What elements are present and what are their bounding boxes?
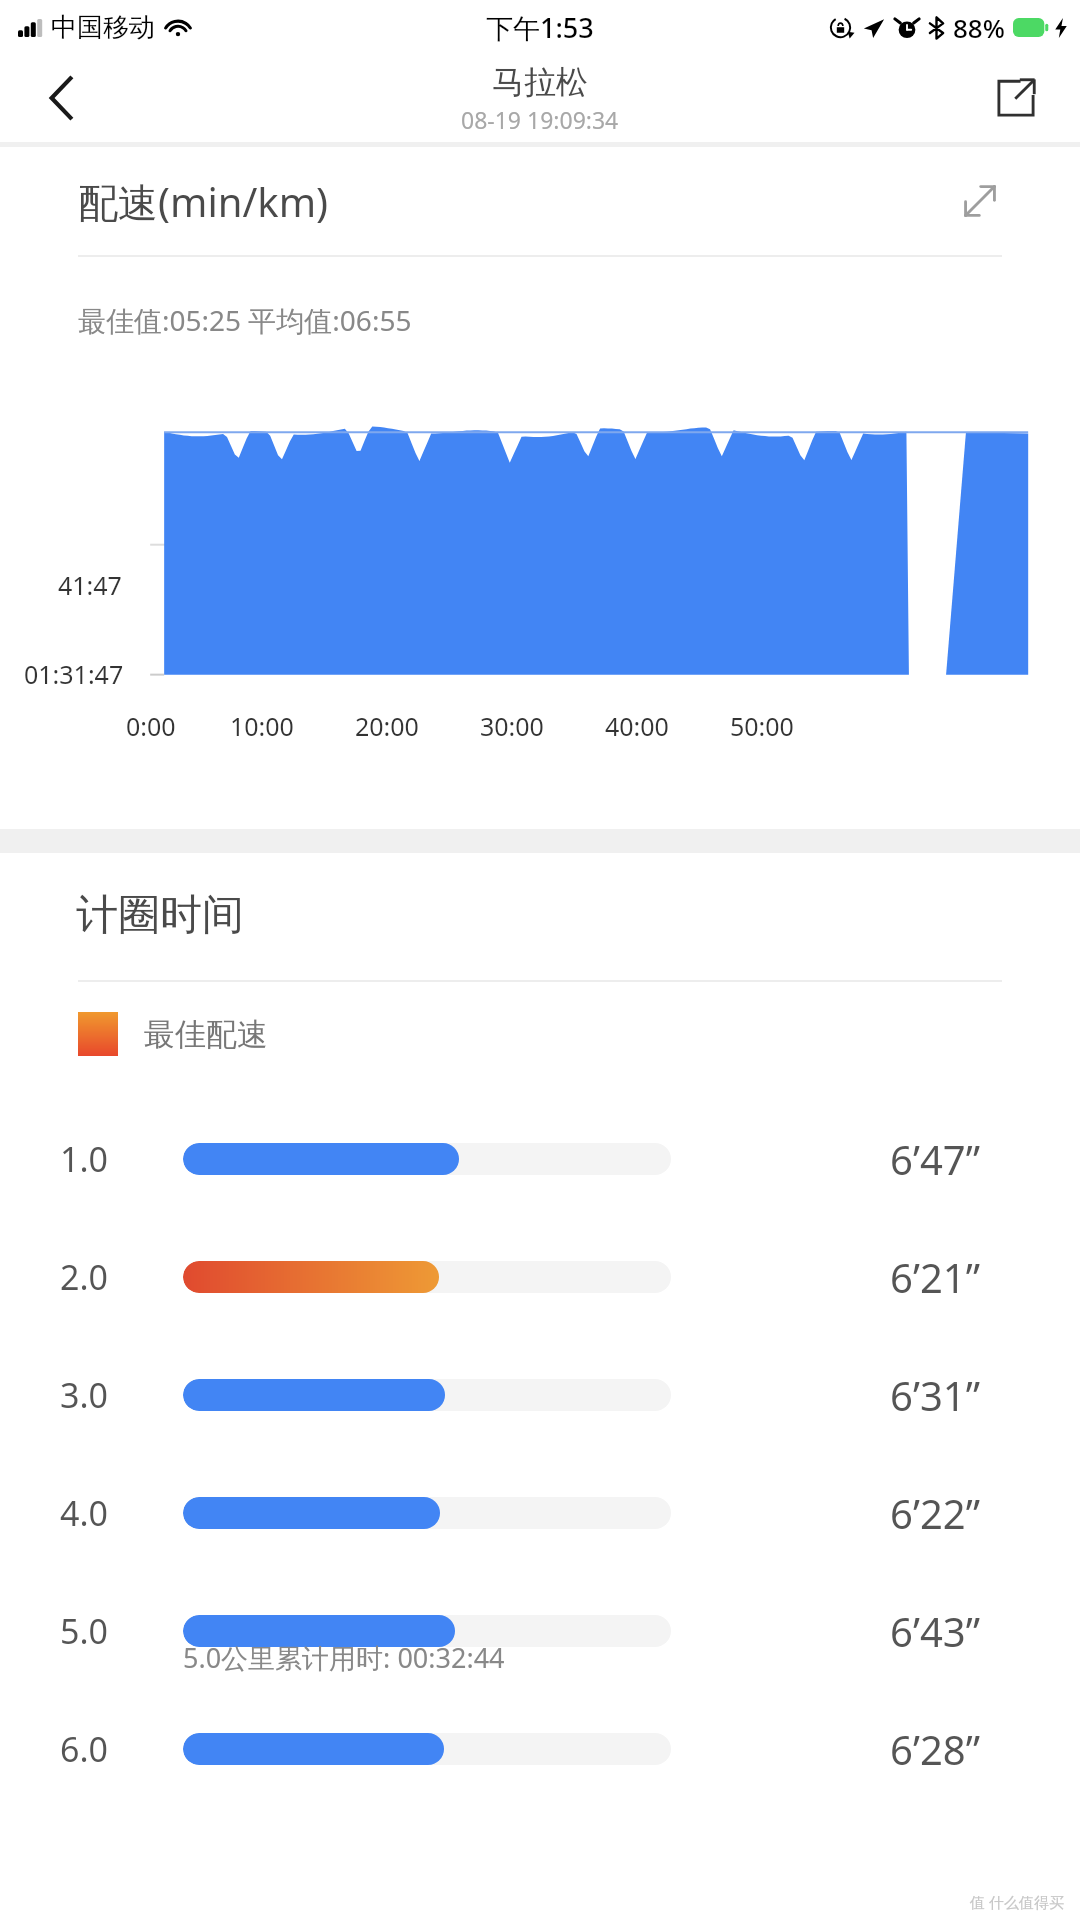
- staticText: 6’43”: [890, 1604, 980, 1658]
- staticText: 最佳值:05:25 平均值:06:55: [78, 301, 412, 339]
- staticText: 10:00: [230, 709, 294, 743]
- staticText: 20:00: [355, 709, 419, 743]
- staticText: 2.0: [60, 1254, 109, 1300]
- staticText: 5.0: [60, 1608, 109, 1654]
- button[interactable]: Expand chart: [952, 173, 1008, 229]
- button[interactable]: 3.0: [0, 1336, 1080, 1454]
- staticText: 6’28”: [890, 1722, 980, 1776]
- staticText: 最佳配速: [144, 1015, 268, 1054]
- staticText: 08-19 19:09:34: [461, 104, 619, 135]
- staticText: 5.0公里累计用时: 00:32:44: [183, 1639, 505, 1676]
- staticText: 01:31:47: [24, 657, 124, 691]
- button[interactable]: Back: [32, 68, 92, 128]
- staticText: 88%: [953, 10, 1005, 45]
- staticText: 马拉松: [492, 62, 588, 102]
- staticText: 40:00: [605, 709, 669, 743]
- button[interactable]: 5.0: [0, 1572, 1080, 1690]
- staticText: 6.0: [60, 1726, 109, 1772]
- staticText: 配速(min/km): [78, 174, 329, 229]
- staticText: 6’47”: [890, 1132, 980, 1186]
- button[interactable]: 1.0: [0, 1100, 1080, 1218]
- button[interactable]: 6.0: [0, 1690, 1080, 1808]
- staticText: 50:00: [730, 709, 794, 743]
- staticText: 6’21”: [890, 1250, 980, 1304]
- staticText: 4.0: [60, 1490, 109, 1536]
- staticText: 1.0: [60, 1136, 109, 1182]
- button[interactable]: 2.0: [0, 1218, 1080, 1336]
- staticText: 中国移动: [51, 11, 155, 44]
- staticText: 41:47: [58, 568, 122, 602]
- button[interactable]: 4.0: [0, 1454, 1080, 1572]
- staticText: 值 什么值得买: [970, 1892, 1064, 1912]
- staticText: 3.0: [60, 1372, 109, 1418]
- staticText: 下午1:53: [486, 9, 594, 46]
- staticText: 6’31”: [890, 1368, 980, 1422]
- staticText: 计圈时间: [76, 889, 244, 942]
- button[interactable]: Share: [986, 68, 1046, 128]
- staticText: 6’22”: [890, 1486, 980, 1540]
- staticText: 30:00: [480, 709, 544, 743]
- staticText: 0:00: [126, 709, 176, 743]
